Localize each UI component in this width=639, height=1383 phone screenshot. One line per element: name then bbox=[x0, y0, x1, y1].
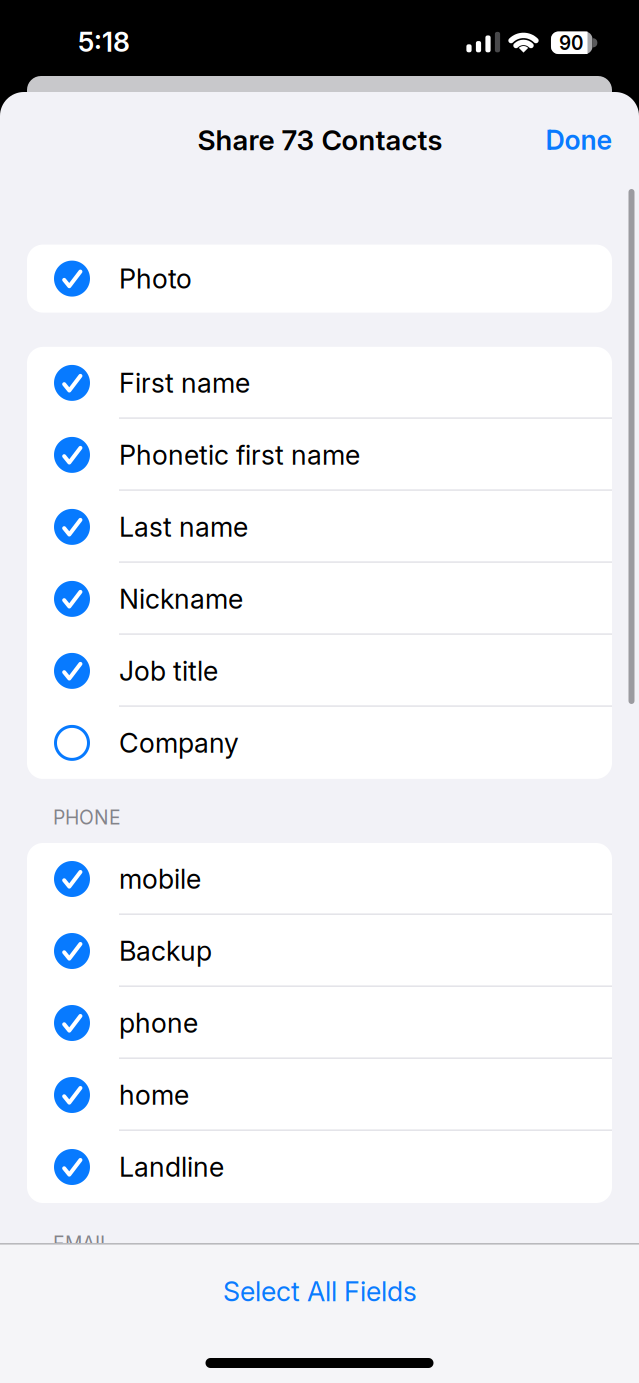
staticText: Phonetic first name bbox=[119, 439, 360, 471]
button[interactable]: mobile bbox=[27, 843, 612, 915]
button[interactable]: Backup bbox=[27, 915, 612, 987]
button[interactable]: First name bbox=[27, 347, 612, 419]
button[interactable]: Done bbox=[529, 118, 629, 162]
staticText: Share 73 Contacts bbox=[197, 123, 442, 157]
button[interactable]: Nickname bbox=[27, 563, 612, 635]
staticText: Photo bbox=[119, 262, 192, 295]
staticText: Landline bbox=[119, 1151, 224, 1183]
staticText: 90 bbox=[559, 32, 583, 55]
staticText: Last name bbox=[119, 511, 248, 543]
button[interactable]: Company bbox=[27, 707, 612, 779]
staticText: home bbox=[119, 1079, 189, 1111]
staticText: First name bbox=[119, 367, 250, 399]
button[interactable]: Landline bbox=[27, 1131, 612, 1203]
staticText: Backup bbox=[119, 935, 212, 967]
staticText: Select All Fields bbox=[223, 1275, 417, 1308]
button[interactable]: Select All Fields bbox=[180, 1262, 460, 1320]
button[interactable]: Last name bbox=[27, 491, 612, 563]
staticText: 5:18 bbox=[78, 26, 130, 58]
staticText: mobile bbox=[119, 863, 201, 895]
staticText: Done bbox=[545, 124, 612, 156]
staticText: phone bbox=[119, 1007, 198, 1039]
staticText: Nickname bbox=[119, 583, 243, 615]
staticText: Company bbox=[119, 727, 239, 759]
button[interactable]: Phonetic first name bbox=[27, 419, 612, 491]
staticText: Job title bbox=[119, 655, 218, 687]
staticText: EMAIL bbox=[53, 1232, 111, 1255]
button[interactable]: home bbox=[27, 1059, 612, 1131]
button[interactable]: phone bbox=[27, 987, 612, 1059]
button[interactable]: Job title bbox=[27, 635, 612, 707]
staticText: PHONE bbox=[53, 806, 121, 829]
button[interactable]: Photo bbox=[27, 245, 612, 313]
